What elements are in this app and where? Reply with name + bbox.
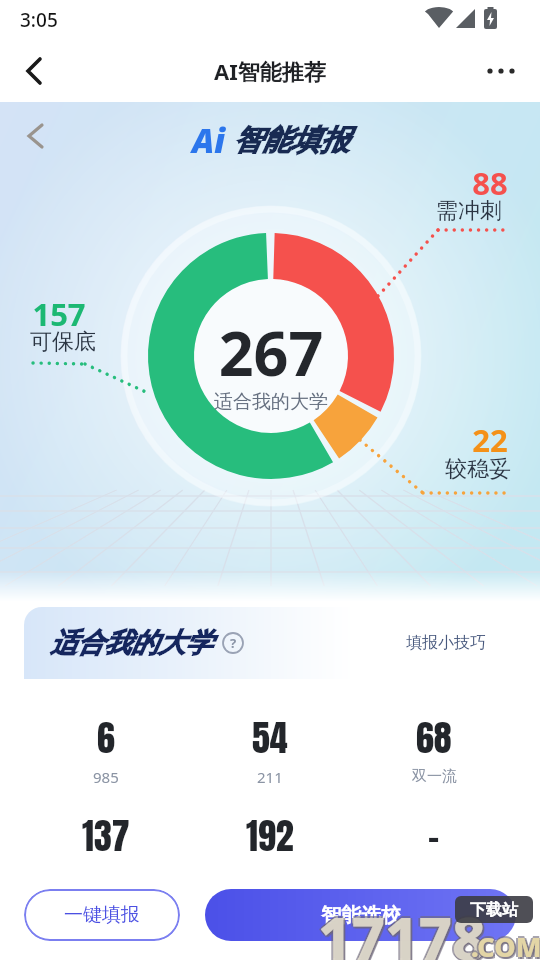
staticText: 17178 — [316, 898, 484, 960]
staticText: 137 — [82, 809, 130, 863]
staticText: .COM — [473, 928, 540, 960]
staticText: .COM — [471, 928, 540, 960]
staticText: 192 — [246, 809, 294, 863]
staticText: 双一流 — [412, 767, 457, 786]
staticText: 适合我的大学 — [86, 390, 456, 414]
staticText: 6 — [97, 711, 115, 765]
staticText: .COM — [471, 926, 540, 960]
staticText: 3:05 — [20, 7, 58, 33]
staticText: .COM — [471, 930, 540, 960]
staticText: - — [428, 809, 440, 863]
staticText: 22 — [450, 419, 530, 461]
staticText: 一键填报 — [64, 903, 140, 927]
staticText: 17178 — [318, 898, 486, 960]
staticText: .COM — [473, 930, 540, 960]
button[interactable]: 一键填报 — [24, 889, 180, 941]
staticText: 智能填报 — [233, 122, 349, 159]
staticText: 54 — [252, 711, 288, 765]
button[interactable]: ? — [222, 632, 244, 654]
staticText: 可保底 — [23, 328, 103, 356]
staticText: 智能选校 — [321, 903, 401, 928]
staticText: 88 — [450, 162, 530, 204]
staticText: .COM — [469, 928, 540, 960]
staticText: 适合我的大学 — [50, 626, 212, 660]
staticText: 17178 — [320, 900, 488, 960]
staticText: 17178 — [318, 896, 486, 960]
button[interactable] — [486, 66, 516, 76]
staticText: 较稳妥 — [438, 455, 518, 483]
button[interactable]: 填报小技巧 — [406, 633, 486, 653]
staticText: ? — [230, 634, 237, 652]
staticText: 需冲刺 — [429, 197, 509, 225]
staticText: 211 — [257, 767, 283, 787]
staticText: 157 — [19, 293, 99, 335]
staticText: 填报小技巧 — [406, 633, 486, 653]
staticText: AI智能推荐 — [214, 56, 326, 86]
staticText: 68 — [416, 711, 452, 765]
staticText: 985 — [93, 767, 119, 787]
staticText: 17178 — [318, 900, 486, 960]
staticText: 17178 — [320, 898, 488, 960]
staticText: 下载站 — [470, 900, 518, 920]
staticText: 267 — [86, 311, 456, 394]
button[interactable]: 智能选校 — [205, 889, 516, 941]
staticText: Ai — [192, 118, 226, 163]
button[interactable] — [16, 53, 52, 89]
